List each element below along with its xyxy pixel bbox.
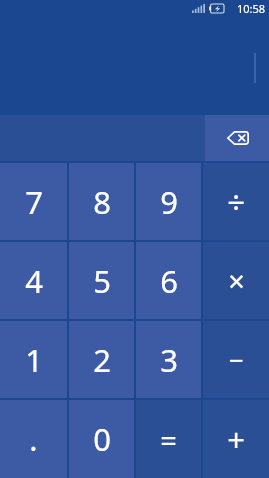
- button[interactable]: Backspace: [205, 115, 269, 161]
- staticText: .: [29, 418, 38, 460]
- staticText: 0: [93, 418, 111, 460]
- staticText: 10:58: [237, 1, 266, 16]
- staticText: 1: [25, 339, 43, 381]
- staticText: 7: [25, 181, 43, 223]
- button[interactable]: 3: [136, 321, 201, 398]
- button[interactable]: 6: [136, 242, 201, 319]
- staticText: −: [229, 342, 244, 377]
- staticText: 5: [93, 260, 111, 302]
- staticText: =: [160, 420, 177, 459]
- button[interactable]: ×: [203, 242, 269, 319]
- staticText: 2: [93, 339, 111, 381]
- button[interactable]: =: [136, 400, 201, 478]
- button[interactable]: 9: [136, 163, 201, 240]
- staticText: 3: [160, 339, 178, 381]
- staticText: ÷: [227, 181, 245, 223]
- button[interactable]: 1: [0, 321, 67, 398]
- other: Battery charging: [209, 4, 224, 13]
- staticText: 6: [160, 260, 178, 302]
- staticText: 9: [160, 181, 178, 223]
- button[interactable]: 8: [69, 163, 134, 240]
- button[interactable]: 2: [69, 321, 134, 398]
- button[interactable]: 4: [0, 242, 67, 319]
- other: Signal strength: [192, 4, 205, 13]
- staticText: +: [227, 418, 245, 460]
- button[interactable]: −: [203, 321, 269, 398]
- staticText: ×: [228, 261, 245, 300]
- button[interactable]: ÷: [203, 163, 269, 240]
- button[interactable]: +: [203, 400, 269, 478]
- button[interactable]: 5: [69, 242, 134, 319]
- staticText: 4: [25, 260, 43, 302]
- staticText: 8: [93, 181, 111, 223]
- button[interactable]: 0: [69, 400, 134, 478]
- button[interactable]: .: [0, 400, 67, 478]
- button[interactable]: 7: [0, 163, 67, 240]
